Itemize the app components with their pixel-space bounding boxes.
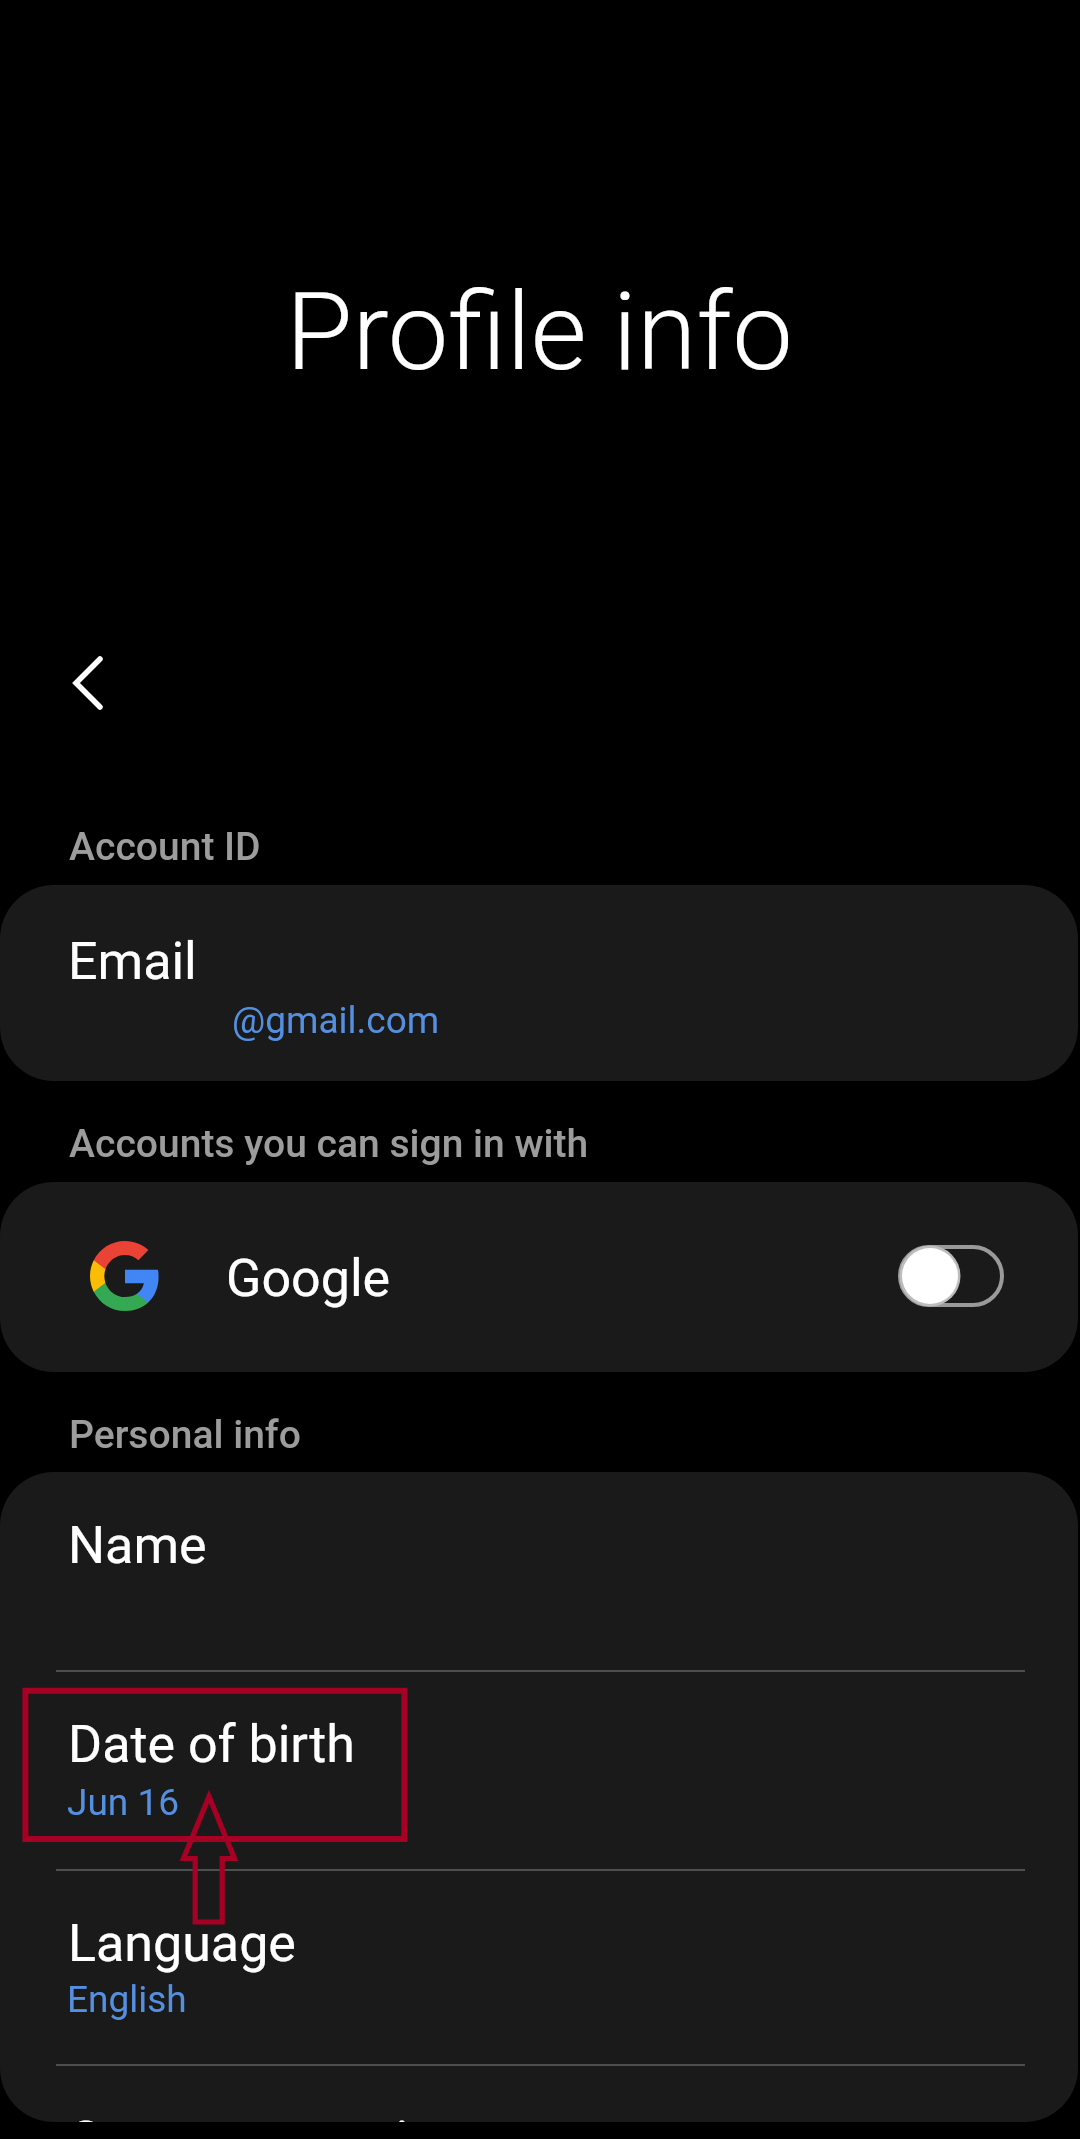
button[interactable]: Language	[0, 1869, 1078, 2064]
staticText: Profile info	[286, 269, 793, 396]
button[interactable]: Country or region	[0, 2066, 1078, 2122]
button[interactable]: Toggle Google sign-in	[898, 1245, 1004, 1307]
staticText: Accounts you can sign in with	[69, 1121, 589, 1167]
staticText: Country or region	[68, 2110, 467, 2122]
button[interactable]: Google	[0, 1182, 1078, 1372]
button[interactable]: Email	[0, 885, 1078, 1081]
button[interactable]: Name	[0, 1472, 1078, 1670]
staticText: Email	[68, 931, 197, 992]
staticText: Personal info	[69, 1412, 301, 1458]
staticText: Language	[68, 1913, 296, 1974]
button[interactable]: Back	[36, 631, 140, 735]
staticText: @gmail.com	[232, 999, 440, 1042]
staticText: Date of birth	[68, 1714, 355, 1775]
staticText: Google	[226, 1248, 391, 1309]
staticText: Name	[68, 1515, 207, 1576]
staticText: Account ID	[69, 824, 261, 870]
staticText: Jun 16	[67, 1781, 180, 1824]
button[interactable]: Date of birth	[0, 1670, 1078, 1869]
staticText: English	[67, 1978, 187, 2021]
